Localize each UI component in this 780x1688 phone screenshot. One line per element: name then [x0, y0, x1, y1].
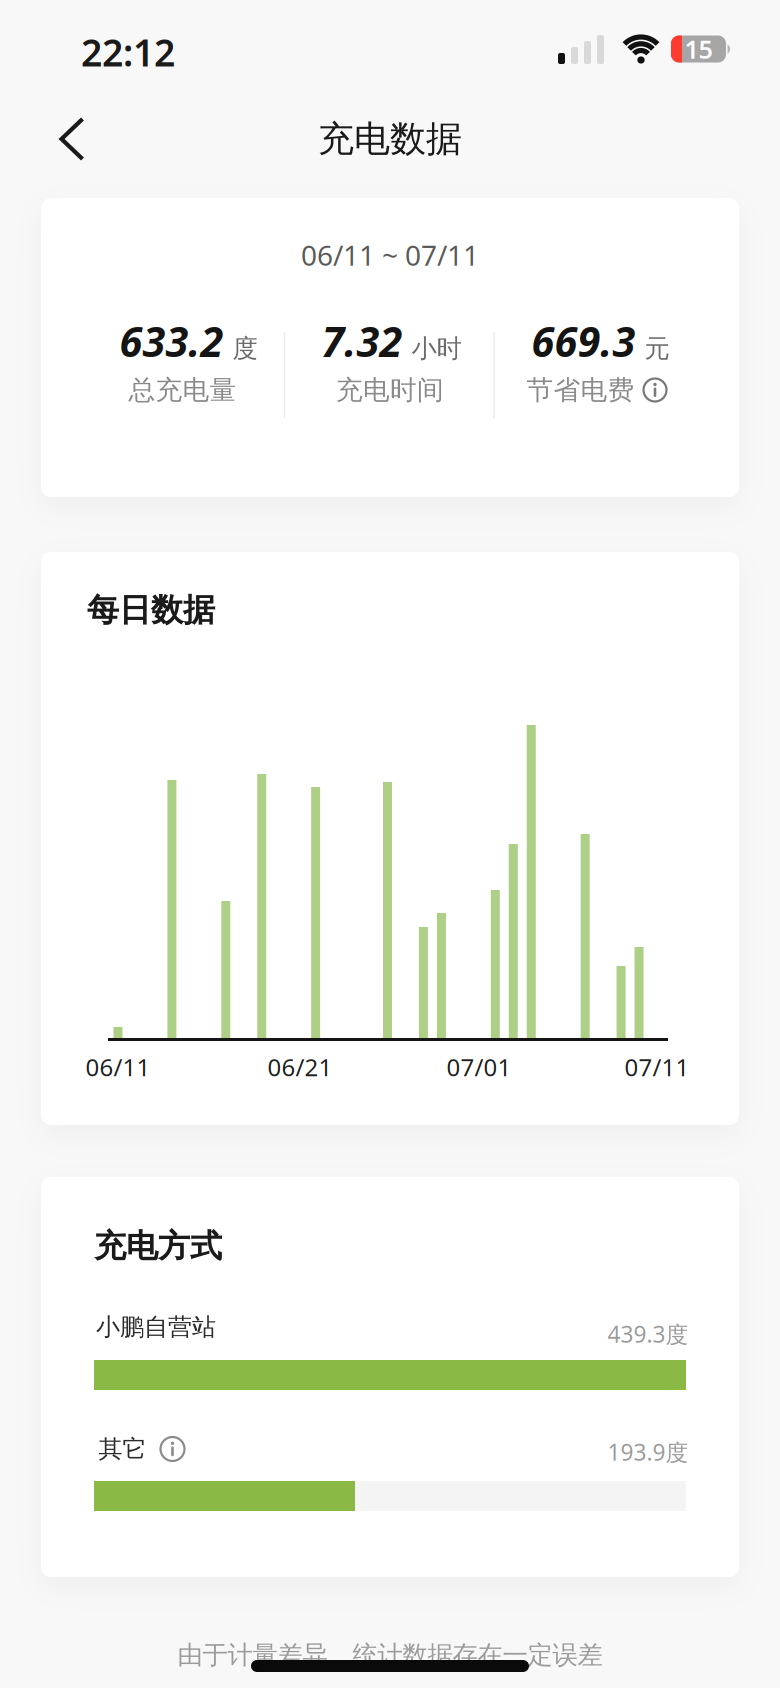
staticText: 633.2 [119, 314, 223, 368]
staticText: 06/11 [85, 1051, 150, 1083]
staticText: 由于计量差异，统计数据存在一定误差 [177, 1639, 602, 1670]
staticText: 充电数据 [318, 117, 462, 161]
staticText: 充电时间 [336, 374, 444, 406]
staticText: 度 [232, 333, 257, 364]
staticText: 小鹏自营站 [96, 1312, 216, 1342]
staticText: 22:12 [81, 27, 175, 77]
staticText: 节省电费 [526, 374, 634, 406]
staticText: 小时 [411, 333, 461, 364]
staticText: 15 [684, 32, 712, 66]
staticText: 07/01 [446, 1051, 511, 1083]
staticText: 其它 [98, 1434, 146, 1464]
staticText: 06/21 [267, 1051, 332, 1083]
staticText: 06/11 ~ 07/11 [301, 236, 479, 274]
staticText: 439.3度 [607, 1319, 688, 1349]
staticText: 07/11 [624, 1051, 689, 1083]
staticText: 充电方式 [94, 1226, 222, 1266]
staticText: 总充电量 [128, 374, 236, 406]
staticText: 7.32 [321, 314, 402, 368]
staticText: 元 [644, 333, 669, 364]
staticText: 193.9度 [607, 1437, 688, 1467]
staticText: 每日数据 [87, 590, 215, 630]
staticText: 669.3 [531, 314, 635, 368]
